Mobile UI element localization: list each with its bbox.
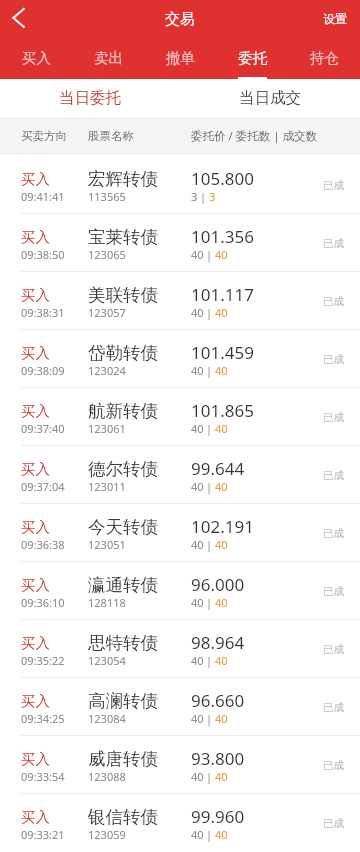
staticText: 93.800 xyxy=(191,747,245,770)
staticText: 99.960 xyxy=(191,805,245,828)
staticText: 高澜转债 xyxy=(88,690,158,712)
staticText: 09:37:04 xyxy=(21,479,65,494)
staticText: 已成 xyxy=(323,817,344,830)
staticText: | xyxy=(206,711,213,726)
staticText: 40 xyxy=(215,769,228,784)
staticText: 40 xyxy=(215,653,228,668)
staticText: 09:41:41 xyxy=(21,189,65,204)
staticText: 买入 xyxy=(21,808,50,826)
staticText: 买入 xyxy=(21,518,50,536)
staticText: 委托价 / 委托数 | 成交数 xyxy=(191,128,318,144)
button[interactable]: Back xyxy=(0,0,38,40)
staticText: 美联转债 xyxy=(88,284,158,306)
button[interactable]: 买入 xyxy=(0,387,360,445)
staticText: | xyxy=(206,653,213,668)
staticText: 持仓 xyxy=(310,49,339,67)
button[interactable]: 买入 xyxy=(0,445,360,503)
staticText: 123051 xyxy=(88,537,126,552)
staticText: 98.964 xyxy=(191,631,245,654)
staticText: 40 xyxy=(215,537,228,552)
staticText: 40 xyxy=(215,305,228,320)
button[interactable]: 委托 xyxy=(216,40,288,79)
button[interactable]: 买入 xyxy=(0,619,360,677)
staticText: 买卖方向 xyxy=(21,129,67,143)
staticText: 105.800 xyxy=(191,167,254,190)
staticText: 已成 xyxy=(323,353,344,366)
staticText: 买入 xyxy=(21,460,50,478)
staticText: 40 xyxy=(191,537,204,552)
staticText: 113565 xyxy=(88,189,126,204)
staticText: | xyxy=(200,189,207,204)
staticText: 岱勒转债 xyxy=(88,342,158,364)
button[interactable]: 买入 xyxy=(0,503,360,561)
staticText: 瀛通转债 xyxy=(88,574,158,596)
staticText: 40 xyxy=(215,827,228,842)
button[interactable]: 撤单 xyxy=(144,40,216,79)
button[interactable]: 买入 xyxy=(0,40,72,79)
button[interactable]: 买入 xyxy=(0,155,360,213)
staticText: 今天转债 xyxy=(88,516,158,538)
staticText: 宝莱转债 xyxy=(88,226,158,248)
staticText: 40 xyxy=(215,421,228,436)
staticText: 已成 xyxy=(323,527,344,540)
staticText: 3 xyxy=(191,189,198,204)
staticText: 40 xyxy=(215,595,228,610)
button[interactable]: 买入 xyxy=(0,677,360,735)
staticText: 101.117 xyxy=(191,283,254,306)
staticText: | xyxy=(206,769,213,784)
staticText: 09:38:50 xyxy=(21,247,65,262)
staticText: 09:33:21 xyxy=(21,827,65,842)
staticText: 09:34:25 xyxy=(21,711,65,726)
staticText: 买入 xyxy=(21,286,50,304)
staticText: 40 xyxy=(191,305,204,320)
staticText: | xyxy=(206,363,213,378)
button[interactable]: 买入 xyxy=(0,561,360,619)
button[interactable]: 买入 xyxy=(0,271,360,329)
staticText: 撤单 xyxy=(166,49,195,67)
staticText: 已成 xyxy=(323,701,344,714)
staticText: 123011 xyxy=(88,479,126,494)
button[interactable]: 当日成交 xyxy=(180,79,360,117)
staticText: 买入 xyxy=(21,692,50,710)
staticText: 银信转债 xyxy=(88,806,158,828)
staticText: | xyxy=(206,827,213,842)
staticText: 卖出 xyxy=(94,49,123,67)
staticText: 已成 xyxy=(323,411,344,424)
staticText: 40 xyxy=(191,479,204,494)
button[interactable]: 当日委托 xyxy=(0,79,180,117)
staticText: 09:36:10 xyxy=(21,595,65,610)
staticText: 09:33:54 xyxy=(21,769,65,784)
staticText: | xyxy=(206,305,213,320)
staticText: 当日委托 xyxy=(59,88,121,108)
staticText: 股票名称 xyxy=(88,129,134,143)
staticText: 09:37:40 xyxy=(21,421,65,436)
button[interactable]: 买入 xyxy=(0,735,360,793)
button[interactable]: 买入 xyxy=(0,329,360,387)
staticText: 102.191 xyxy=(191,515,254,538)
button[interactable]: 买入 xyxy=(0,213,360,271)
staticText: 买入 xyxy=(21,228,50,246)
staticText: 40 xyxy=(215,479,228,494)
staticText: 买入 xyxy=(21,576,50,594)
staticText: 买入 xyxy=(21,402,50,420)
staticText: 买入 xyxy=(21,750,50,768)
staticText: 设置 xyxy=(323,11,347,26)
staticText: 买入 xyxy=(21,344,50,362)
staticText: 委托 xyxy=(238,49,267,67)
staticText: 买入 xyxy=(21,170,50,188)
button[interactable]: 持仓 xyxy=(288,40,360,79)
staticText: 已成 xyxy=(323,643,344,656)
button[interactable]: 买入 xyxy=(0,793,360,851)
staticText: 123024 xyxy=(88,363,126,378)
staticText: 40 xyxy=(191,421,204,436)
staticText: | xyxy=(206,479,213,494)
staticText: 123084 xyxy=(88,711,126,726)
staticText: 交易 xyxy=(165,10,195,29)
staticText: 40 xyxy=(191,769,204,784)
staticText: 40 xyxy=(191,595,204,610)
button[interactable]: 卖出 xyxy=(72,40,144,79)
button[interactable]: 设置 xyxy=(310,0,360,40)
staticText: 101.865 xyxy=(191,399,254,422)
staticText: 123059 xyxy=(88,827,126,842)
staticText: | xyxy=(206,537,213,552)
